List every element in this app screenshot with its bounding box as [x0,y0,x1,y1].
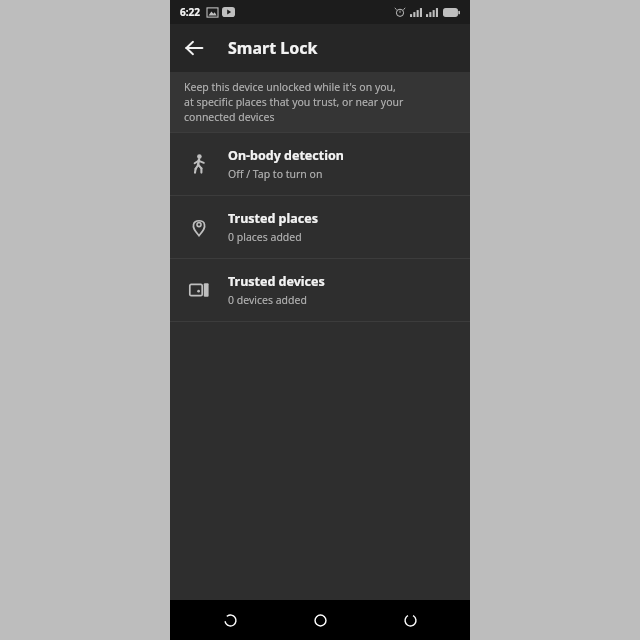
button[interactable]: Home [290,600,350,640]
staticText: 0 devices added [228,293,307,307]
staticText: Keep this device unlocked while it's on … [184,80,404,124]
button[interactable]: Trusted places [170,196,470,258]
button[interactable]: Recent apps [200,600,260,640]
staticText: Off / Tap to turn on [228,167,323,181]
staticText: Smart Lock [228,37,318,59]
button[interactable]: Trusted devices [170,259,470,321]
staticText: 6:22 [180,5,200,19]
staticText: On-body detection [228,147,344,164]
button[interactable]: On-body detection [170,133,470,195]
staticText: Trusted places [228,210,318,227]
button[interactable]: Back [170,24,218,72]
other: Trusted devices [170,259,228,321]
other: Trusted places [170,196,228,258]
button[interactable]: Back [380,600,440,640]
other: On-body detection [170,133,228,195]
staticText: 0 places added [228,230,302,244]
staticText: Trusted devices [228,273,325,290]
